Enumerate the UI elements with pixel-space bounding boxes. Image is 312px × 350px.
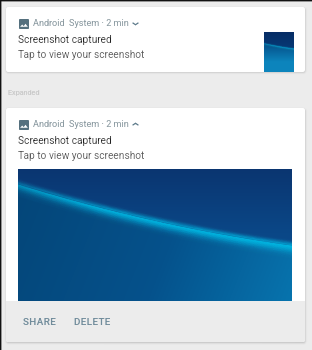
staticText: Tap to view your screenshot [18,150,145,162]
staticText: SHARE [23,316,57,327]
staticText: Android System · 2 min [33,119,129,130]
button[interactable]: Android System · 2 min [6,108,305,342]
button[interactable]: Collapse notification [132,121,139,128]
staticText: DELETE [74,316,111,327]
staticText: Expanded [8,88,40,96]
staticText: Android System · 2 min [33,18,129,29]
button[interactable]: Android System · 2 min [6,7,305,72]
button[interactable]: DELETE [66,308,119,335]
staticText: Screenshot captured [18,34,112,46]
button[interactable]: SHARE [15,308,65,335]
staticText: Screenshot captured [18,135,112,147]
button[interactable]: Expand notification [132,20,139,27]
staticText: Tap to view your screenshot [18,49,145,61]
